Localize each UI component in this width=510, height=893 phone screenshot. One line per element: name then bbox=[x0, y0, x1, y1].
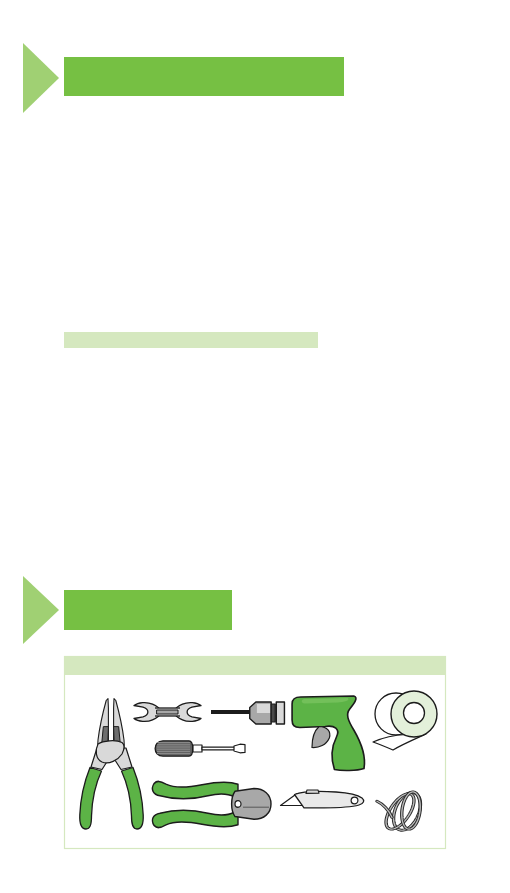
button[interactable]: Expand section one bbox=[23, 43, 59, 113]
button[interactable]: Hand tools illustration bbox=[64, 656, 446, 849]
button[interactable]: Expand section two bbox=[23, 576, 59, 644]
